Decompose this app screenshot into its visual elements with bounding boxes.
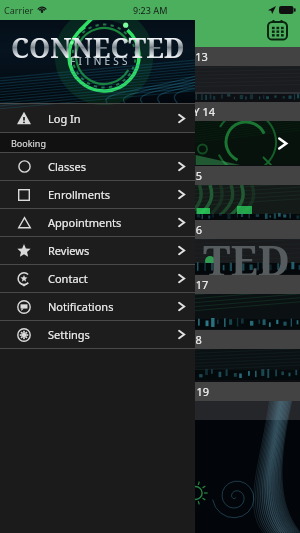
staticText: WEDNESDAY 13	[127, 49, 208, 64]
button[interactable]: Notifications	[0, 293, 195, 320]
button[interactable]: Enrollments	[0, 181, 195, 208]
staticText: Carrier	[4, 4, 34, 16]
button[interactable]: Settings	[0, 321, 195, 348]
staticText: FITNESS	[70, 54, 131, 68]
staticText: FRIDAY 15	[150, 168, 203, 183]
button[interactable]: Reviews	[0, 237, 195, 264]
staticText: CONNECTED	[11, 29, 185, 66]
button[interactable]: Log In	[0, 104, 195, 132]
staticText: Log In	[48, 111, 81, 126]
staticText: Settings	[48, 327, 90, 342]
button[interactable]: Contact	[0, 265, 195, 292]
staticText: 9:23 AM	[133, 4, 168, 16]
button[interactable]	[0, 121, 300, 166]
staticText: Contact	[48, 271, 88, 286]
button[interactable]: Appointments	[0, 209, 195, 236]
staticText: Notifications	[48, 299, 114, 314]
button[interactable]: Calendar	[263, 15, 291, 43]
staticText: THURSDAY 14	[144, 104, 216, 119]
staticText: Classes	[48, 159, 86, 174]
button[interactable]: Classes	[0, 153, 195, 180]
staticText: TUESDAY 19	[147, 384, 210, 399]
staticText: Reviews	[48, 243, 90, 258]
staticText: Booking	[11, 137, 46, 149]
staticText: TED	[203, 231, 291, 288]
staticText: SATURDAY 16	[133, 222, 203, 237]
staticText: MONDAY 18	[139, 332, 202, 347]
staticText: Appointments	[48, 215, 122, 230]
staticText: SUNDAY 17	[150, 277, 209, 292]
staticText: Enrollments	[48, 187, 111, 202]
